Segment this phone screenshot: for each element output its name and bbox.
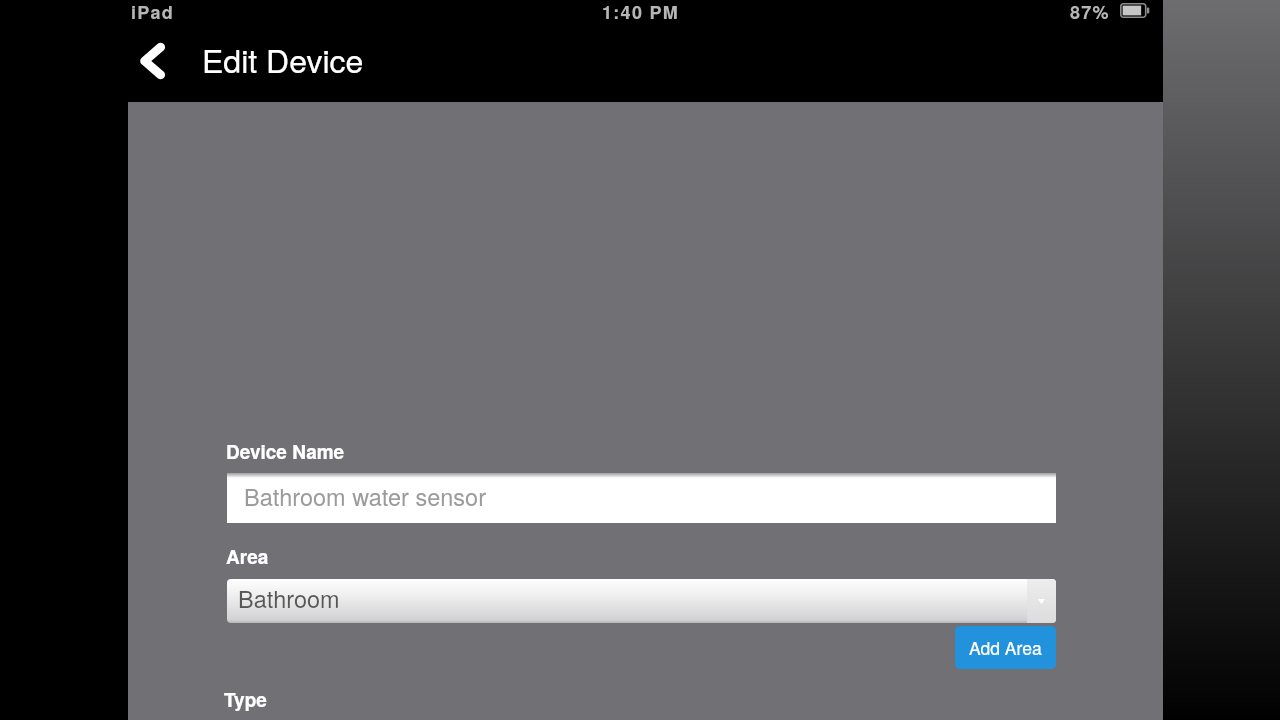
staticText: Area (226, 543, 269, 570)
button[interactable]: Back (128, 30, 176, 92)
staticText: 87% (1070, 0, 1110, 23)
staticText: iPad (131, 0, 175, 23)
staticText: Device Name (226, 438, 345, 465)
button[interactable]: Bathroom water sensor (227, 473, 1056, 523)
staticText: Type (224, 686, 267, 713)
staticText: Bathroom (238, 581, 340, 615)
button[interactable]: Add Area (955, 626, 1056, 669)
staticText: 1:40 PM (602, 0, 680, 23)
staticText: Add Area (969, 635, 1042, 660)
button[interactable]: Bathroom (227, 579, 1056, 623)
staticText: Bathroom water sensor (244, 479, 486, 513)
staticText: Edit Device (202, 36, 364, 82)
